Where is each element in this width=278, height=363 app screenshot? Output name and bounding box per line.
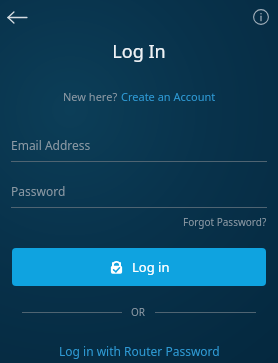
staticText: Create an Account [121,89,216,104]
button[interactable]: Log in [12,248,266,286]
staticText: New here? [63,89,121,104]
button[interactable]: Forgot Password? [183,215,267,229]
staticText: Log In [0,39,278,64]
staticText: Email Address [11,137,91,153]
button[interactable]: Log in with Router Password [51,341,228,361]
button[interactable]: Create an Account [121,89,216,104]
staticText: Log in with Router Password [59,343,220,359]
staticText: OR [131,305,146,319]
staticText: Log in [132,258,170,276]
button[interactable]: Information [244,0,278,34]
staticText: Password [11,183,66,199]
button[interactable]: Back [0,0,34,34]
staticText: Forgot Password? [183,215,267,229]
